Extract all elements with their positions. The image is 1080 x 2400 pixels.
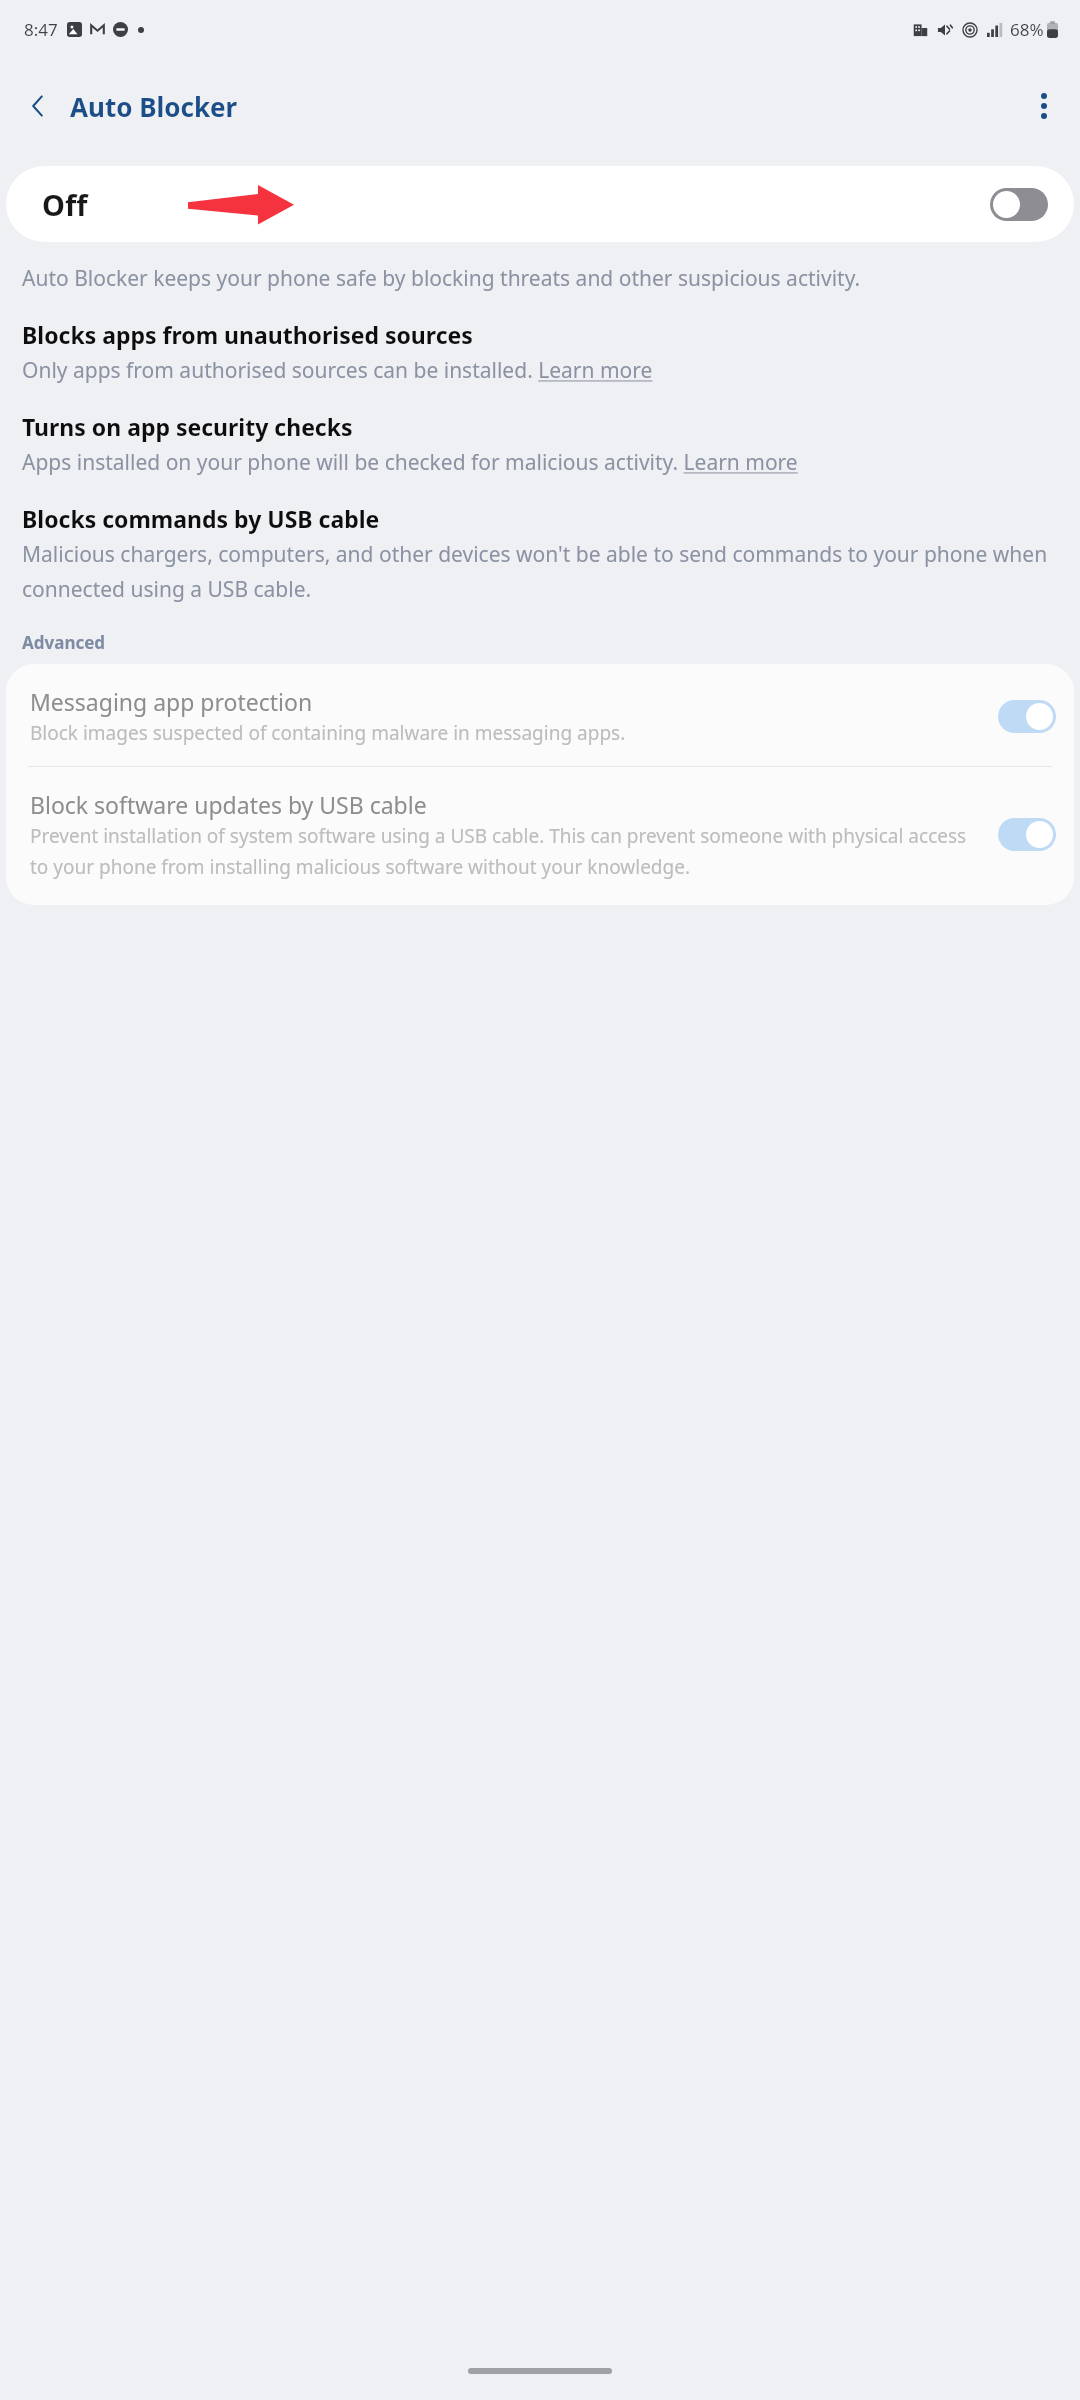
- staticText: Prevent installation of system software …: [30, 823, 988, 879]
- staticText: Apps installed on your phone will be che…: [22, 448, 798, 477]
- staticText: Block images suspected of containing mal…: [30, 720, 626, 746]
- staticText: Blocks commands by USB cable: [22, 503, 380, 534]
- button[interactable]: Back: [14, 82, 62, 130]
- staticText: Block software updates by USB cable: [30, 789, 427, 820]
- staticText: Advanced: [22, 631, 106, 654]
- button[interactable]: Messaging app protection: [6, 664, 1074, 766]
- button[interactable]: Block software updates by USB cable: [6, 767, 1074, 905]
- staticText: Only apps from authorised sources can be…: [22, 356, 653, 385]
- button[interactable]: Off: [6, 166, 1074, 242]
- staticText: Off: [42, 185, 88, 224]
- staticText: Auto Blocker: [70, 89, 238, 124]
- button[interactable]: More options: [1020, 82, 1068, 130]
- staticText: Malicious chargers, computers, and other…: [22, 540, 1058, 603]
- staticText: 8:47: [24, 18, 58, 41]
- staticText: Auto Blocker keeps your phone safe by bl…: [22, 264, 861, 293]
- other: Auto Blocker toggle, off: [990, 188, 1048, 221]
- staticText: Messaging app protection: [30, 686, 313, 717]
- staticText: Turns on app security checks: [22, 411, 353, 442]
- staticText: 68%: [1010, 18, 1044, 41]
- other: Toggle, on, disabled: [998, 700, 1056, 733]
- staticText: Blocks apps from unauthorised sources: [22, 319, 473, 350]
- other: Toggle, on, disabled: [998, 818, 1056, 851]
